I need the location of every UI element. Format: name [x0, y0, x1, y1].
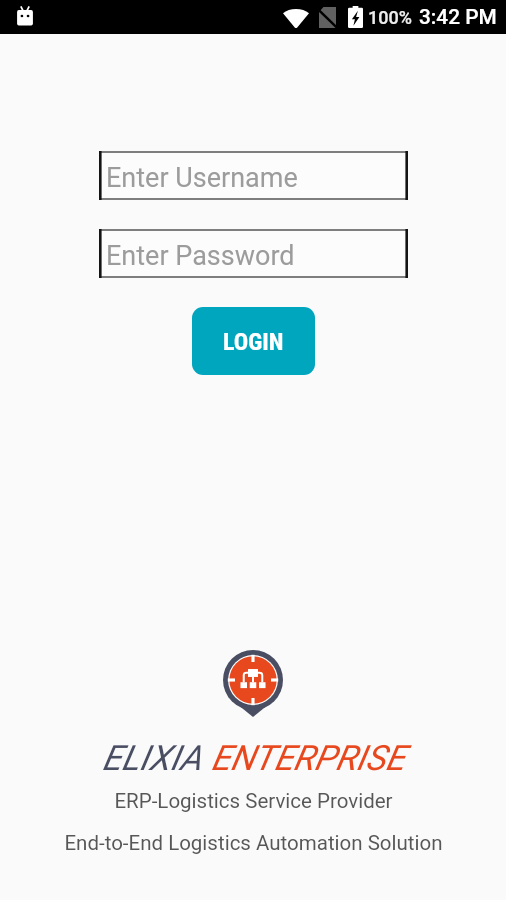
staticText: End-to-End Logistics Automation Solution	[64, 831, 443, 855]
button[interactable]: LOGIN	[192, 307, 315, 375]
staticText: LOGIN	[223, 328, 284, 356]
button[interactable]: Enter Username	[99, 151, 408, 200]
staticText: ENTERPRISE	[211, 738, 405, 779]
staticText: Enter Username	[106, 162, 298, 194]
staticText: 3:42 PM	[419, 5, 497, 29]
button[interactable]: Enter Password	[99, 229, 408, 278]
staticText: ELIXIA	[102, 738, 211, 779]
staticText: 100%	[368, 7, 412, 28]
other: Android	[16, 6, 34, 26]
staticText: Enter Password	[106, 240, 295, 272]
staticText: ERP-Logistics Service Provider	[114, 789, 393, 813]
